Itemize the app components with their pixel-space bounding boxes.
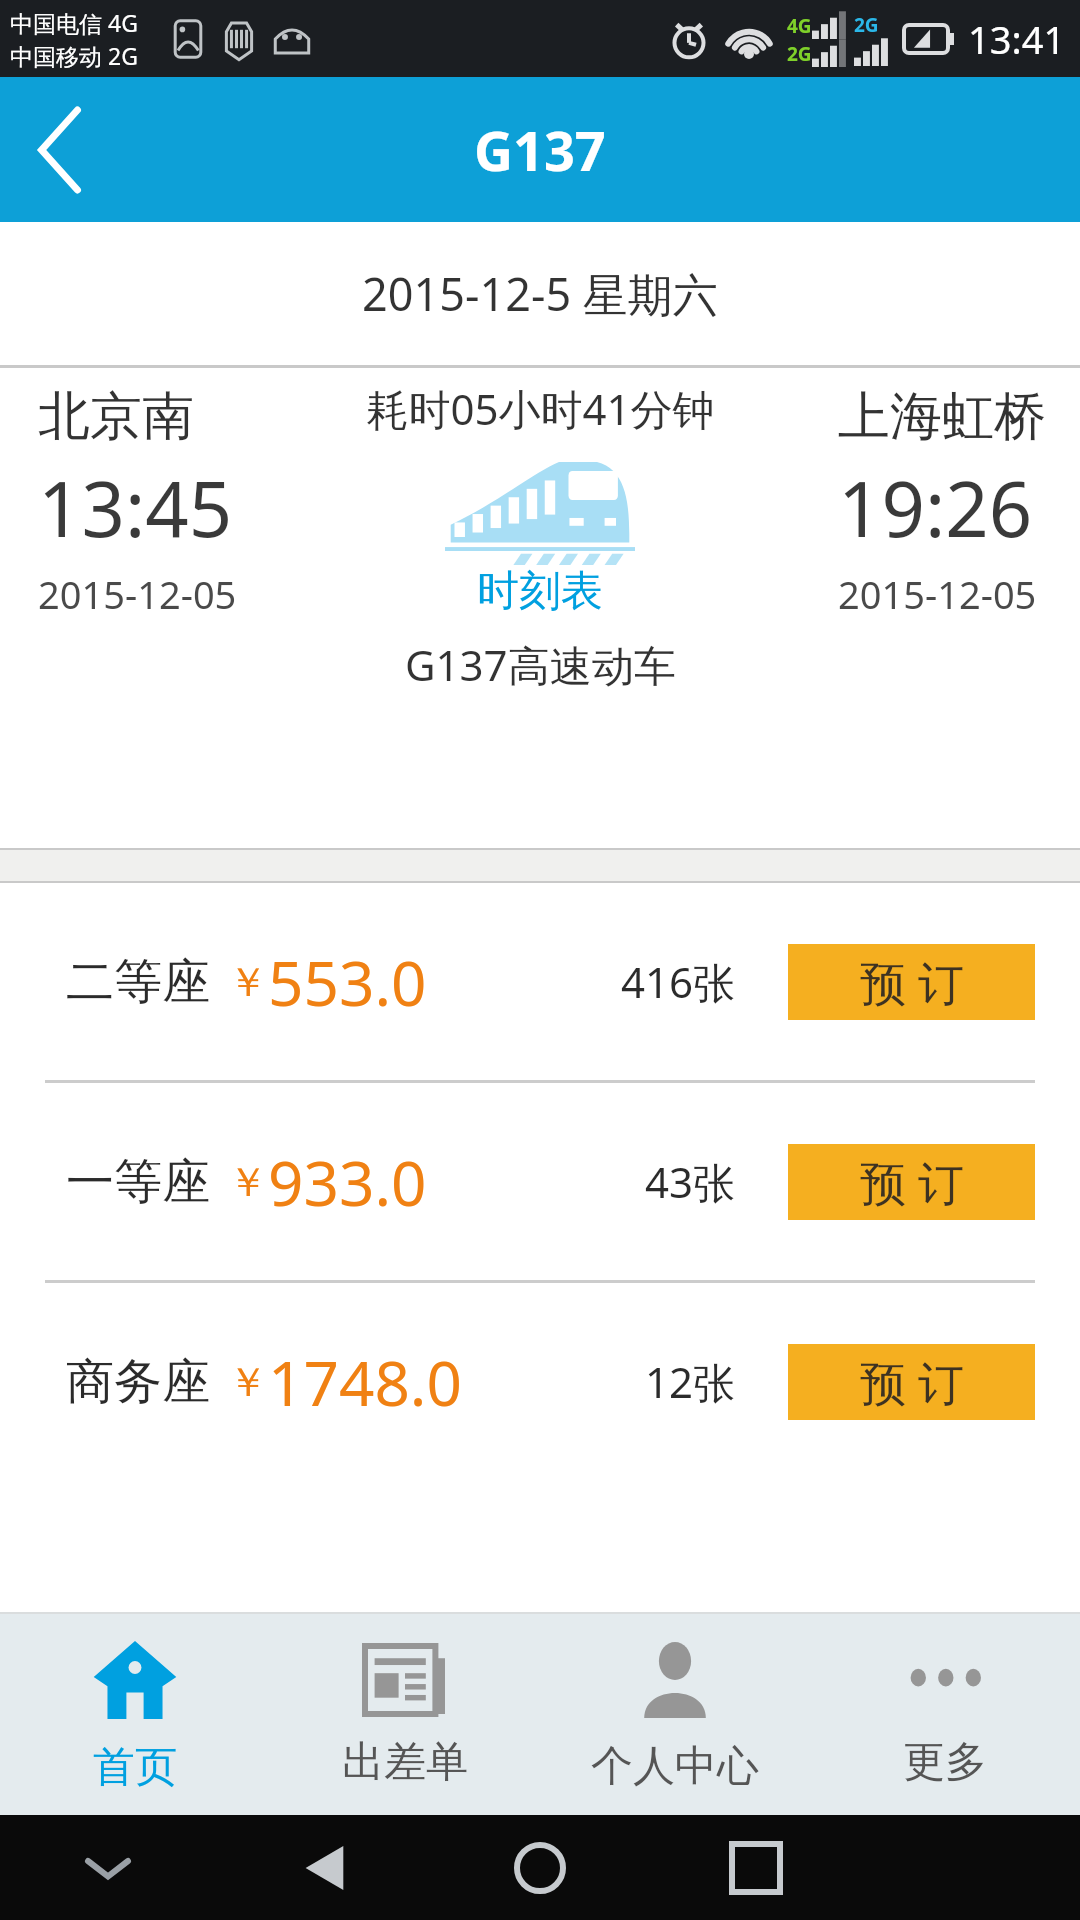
button[interactable]: 更多: [810, 1614, 1080, 1815]
button[interactable]: 二等座: [0, 883, 1080, 1080]
staticText: 商务座: [66, 1352, 210, 1412]
button[interactable]: 商务座: [0, 1283, 1080, 1480]
button[interactable]: 预 订: [788, 944, 1035, 1020]
button[interactable]: Back: [216, 1815, 432, 1920]
staticText: 预 订: [860, 1151, 964, 1214]
staticText: ￥: [228, 1357, 268, 1407]
staticText: G137高速动车: [405, 636, 676, 693]
staticText: 个人中心: [591, 1740, 759, 1793]
staticText: 43张: [645, 1153, 736, 1210]
staticText: 中国电信 4G: [10, 7, 138, 38]
button[interactable]: Hide keyboard: [0, 1815, 216, 1920]
staticText: 13:45: [38, 456, 233, 560]
staticText: 416张: [621, 953, 736, 1010]
staticText: 更多: [903, 1736, 987, 1789]
staticText: 中国移动 2G: [10, 40, 138, 71]
staticText: 首页: [93, 1741, 177, 1794]
staticText: 出差单: [342, 1736, 468, 1789]
staticText: 2015-12-5 星期六: [362, 263, 718, 324]
button[interactable]: 预 订: [788, 1144, 1035, 1220]
button[interactable]: 时刻表: [445, 453, 635, 618]
staticText: ￥: [228, 957, 268, 1007]
staticText: 2015-12-05: [38, 568, 237, 620]
button[interactable]: Home: [432, 1815, 648, 1920]
staticText: G137: [474, 113, 606, 187]
staticText: 耗时05小时41分钟: [366, 380, 715, 437]
button[interactable]: Recent apps: [648, 1815, 864, 1920]
staticText: 4G: [787, 13, 812, 39]
staticText: ￥: [228, 1157, 268, 1207]
staticText: 上海虹桥: [838, 384, 1046, 450]
button[interactable]: 预 订: [788, 1344, 1035, 1420]
staticText: 1748.0: [268, 1340, 462, 1424]
staticText: 2G: [787, 41, 812, 67]
staticText: 2015-12-05: [838, 568, 1037, 620]
staticText: 12张: [645, 1353, 736, 1410]
button[interactable]: 出差单: [270, 1614, 540, 1815]
button[interactable]: Back: [0, 77, 120, 222]
staticText: 933.0: [268, 1140, 427, 1224]
staticText: 2G: [854, 12, 879, 38]
staticText: 二等座: [66, 952, 210, 1012]
staticText: 553.0: [268, 940, 427, 1024]
staticText: 13:41: [968, 13, 1066, 65]
button[interactable]: 个人中心: [540, 1614, 810, 1815]
button[interactable]: 首页: [0, 1614, 270, 1815]
staticText: 时刻表: [477, 565, 603, 618]
staticText: 北京南: [38, 384, 194, 450]
staticText: 19:26: [838, 456, 1033, 560]
staticText: 预 订: [860, 1351, 964, 1414]
staticText: 预 订: [860, 951, 964, 1014]
button[interactable]: 一等座: [0, 1083, 1080, 1280]
staticText: 一等座: [66, 1152, 210, 1212]
